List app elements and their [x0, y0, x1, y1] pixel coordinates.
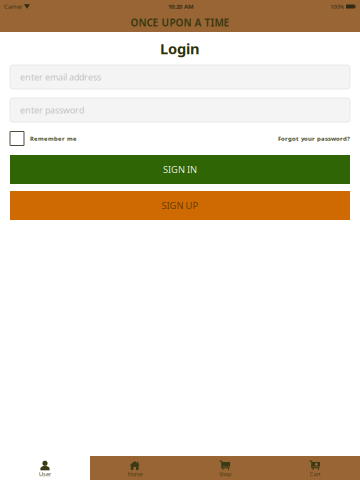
- staticText: User: [39, 470, 51, 478]
- staticText: Home: [127, 470, 142, 478]
- button[interactable]: Cart: [270, 456, 360, 480]
- button[interactable]: SIGN IN: [10, 155, 350, 184]
- staticText: enter email address: [20, 71, 101, 83]
- staticText: ONCE UPON A TIME: [130, 16, 229, 29]
- staticText: 10:20 AM: [168, 2, 194, 11]
- staticText: SIGN IN: [163, 163, 197, 176]
- button[interactable]: Forgot your password?: [278, 134, 350, 143]
- button[interactable]: Home: [90, 456, 180, 480]
- staticText: 100%: [330, 2, 344, 11]
- staticText: Remember me: [30, 134, 77, 142]
- staticText: Forgot your password?: [278, 134, 350, 143]
- staticText: Carrier: [4, 2, 22, 11]
- staticText: Cart: [309, 470, 320, 478]
- staticText: enter password: [20, 104, 84, 116]
- staticText: Shop: [219, 470, 231, 478]
- button[interactable]: Shop: [180, 456, 270, 480]
- button[interactable]: Remember me: [10, 131, 77, 145]
- staticText: Login: [160, 38, 200, 58]
- button[interactable]: User: [0, 456, 90, 480]
- staticText: SIGN UP: [161, 199, 198, 212]
- button[interactable]: SIGN UP: [10, 191, 350, 220]
